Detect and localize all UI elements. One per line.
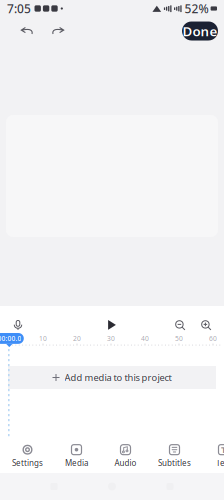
button[interactable]: Settings	[3, 438, 52, 473]
staticText: 60	[209, 334, 217, 343]
staticText: 00:00.0	[0, 334, 21, 343]
staticText: Audio	[114, 458, 136, 468]
button[interactable]: Zoom in	[197, 316, 215, 334]
button[interactable]: Play	[102, 316, 122, 334]
staticText: 7:05	[7, 0, 31, 16]
staticText: 52%	[185, 0, 209, 16]
button[interactable]: Done	[182, 21, 218, 40]
button[interactable]: Undo	[14, 19, 40, 43]
staticText: 40	[141, 334, 149, 343]
staticText: 50	[175, 334, 183, 343]
staticText: 30	[107, 334, 115, 343]
button[interactable]: Redo	[45, 19, 71, 43]
staticText: Settings	[12, 458, 43, 468]
staticText: 20	[73, 334, 81, 343]
staticText: Media	[65, 458, 88, 468]
staticText: 10	[39, 334, 47, 343]
button[interactable]: Subtitles	[150, 438, 199, 473]
button[interactable]: Media	[52, 438, 101, 473]
staticText: Subtitles	[158, 458, 191, 468]
button[interactable]: Audio	[101, 438, 150, 473]
button[interactable]: Add media to this project	[8, 366, 216, 389]
staticText: Done	[182, 22, 217, 40]
button[interactable]: T	[199, 438, 224, 473]
button[interactable]: Record voiceover	[8, 316, 28, 334]
button[interactable]: Zoom out	[171, 316, 189, 334]
staticText: Add media to this project	[64, 371, 171, 384]
staticText: T	[221, 443, 224, 456]
staticText: Text	[216, 458, 224, 468]
